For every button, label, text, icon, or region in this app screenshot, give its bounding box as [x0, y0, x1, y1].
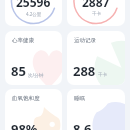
button[interactable]: 25596 [5, 0, 62, 26]
staticText: 288 [73, 62, 96, 80]
staticText: 85 [11, 62, 26, 80]
staticText: 25596 [16, 0, 51, 10]
staticText: 血氧饱和度 [12, 95, 40, 102]
staticText: 2887 [82, 0, 110, 10]
staticText: 心率健康 [12, 37, 34, 44]
button[interactable]: 睡眠 [67, 89, 125, 130]
other: Steps [5, 0, 62, 26]
staticText: 运动记录 [74, 37, 96, 44]
staticText: 次/分钟 [28, 72, 44, 78]
staticText: 4.2公里 [26, 11, 42, 17]
staticText: 千卡 [98, 72, 107, 78]
other: Calories [67, 0, 125, 26]
staticText: 睡眠 [74, 95, 85, 102]
staticText: 千卡 [92, 11, 101, 17]
staticText: 98% [11, 120, 38, 130]
button[interactable]: 血氧饱和度 [5, 89, 62, 130]
button[interactable]: 2887 [67, 0, 125, 26]
staticText: 8.6 [73, 120, 92, 130]
button[interactable]: 心率健康 [5, 31, 62, 85]
button[interactable]: 运动记录 [67, 31, 125, 85]
